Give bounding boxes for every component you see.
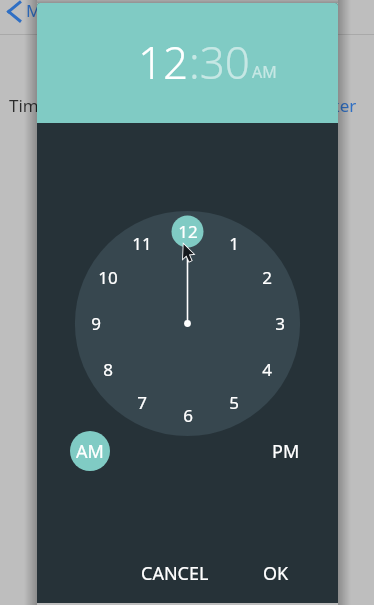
staticText: Time Picker	[9, 94, 102, 117]
staticText: CANCEL	[141, 561, 209, 586]
staticText: 10	[98, 266, 118, 289]
button[interactable]: 3	[264, 307, 296, 339]
button[interactable]: 11	[126, 227, 158, 259]
staticText: 6	[183, 404, 193, 427]
button[interactable]: 6	[172, 399, 204, 431]
button[interactable]: AM	[70, 431, 110, 471]
staticText: 4	[262, 358, 272, 381]
staticText: AM	[252, 61, 277, 83]
staticText: 2	[262, 266, 272, 289]
button[interactable]: 10	[92, 261, 124, 293]
staticText: 9	[91, 312, 101, 335]
button[interactable]: 5	[218, 386, 250, 418]
staticText: 7	[137, 391, 147, 414]
staticText: PM	[272, 439, 300, 464]
button[interactable]: 8	[92, 353, 124, 385]
staticText: OK	[263, 561, 289, 586]
staticText: Main	[26, 0, 66, 22]
staticText: 11	[132, 232, 152, 255]
button[interactable]: OK	[255, 553, 297, 594]
staticText: 5	[229, 391, 239, 414]
staticText: Show picker	[260, 94, 357, 117]
staticText: 3	[275, 312, 285, 335]
button[interactable]: 12	[172, 215, 204, 247]
button[interactable]: 4	[251, 353, 283, 385]
staticText: 12	[178, 220, 198, 243]
button[interactable]: PM	[266, 431, 306, 471]
button[interactable]: 1	[218, 227, 250, 259]
staticText: 1	[229, 232, 239, 255]
button[interactable]: CANCEL	[133, 553, 217, 594]
button[interactable]: 9	[80, 307, 112, 339]
staticText: 8	[103, 358, 113, 381]
button[interactable]: 12	[138, 32, 189, 92]
button[interactable]: :30	[189, 32, 250, 92]
button[interactable]: 7	[126, 386, 158, 418]
button[interactable]: Show picker	[260, 94, 357, 117]
staticText: AM	[76, 439, 104, 464]
button[interactable]: 2	[251, 261, 283, 293]
button[interactable]: Back to Main	[0, 0, 374, 34]
